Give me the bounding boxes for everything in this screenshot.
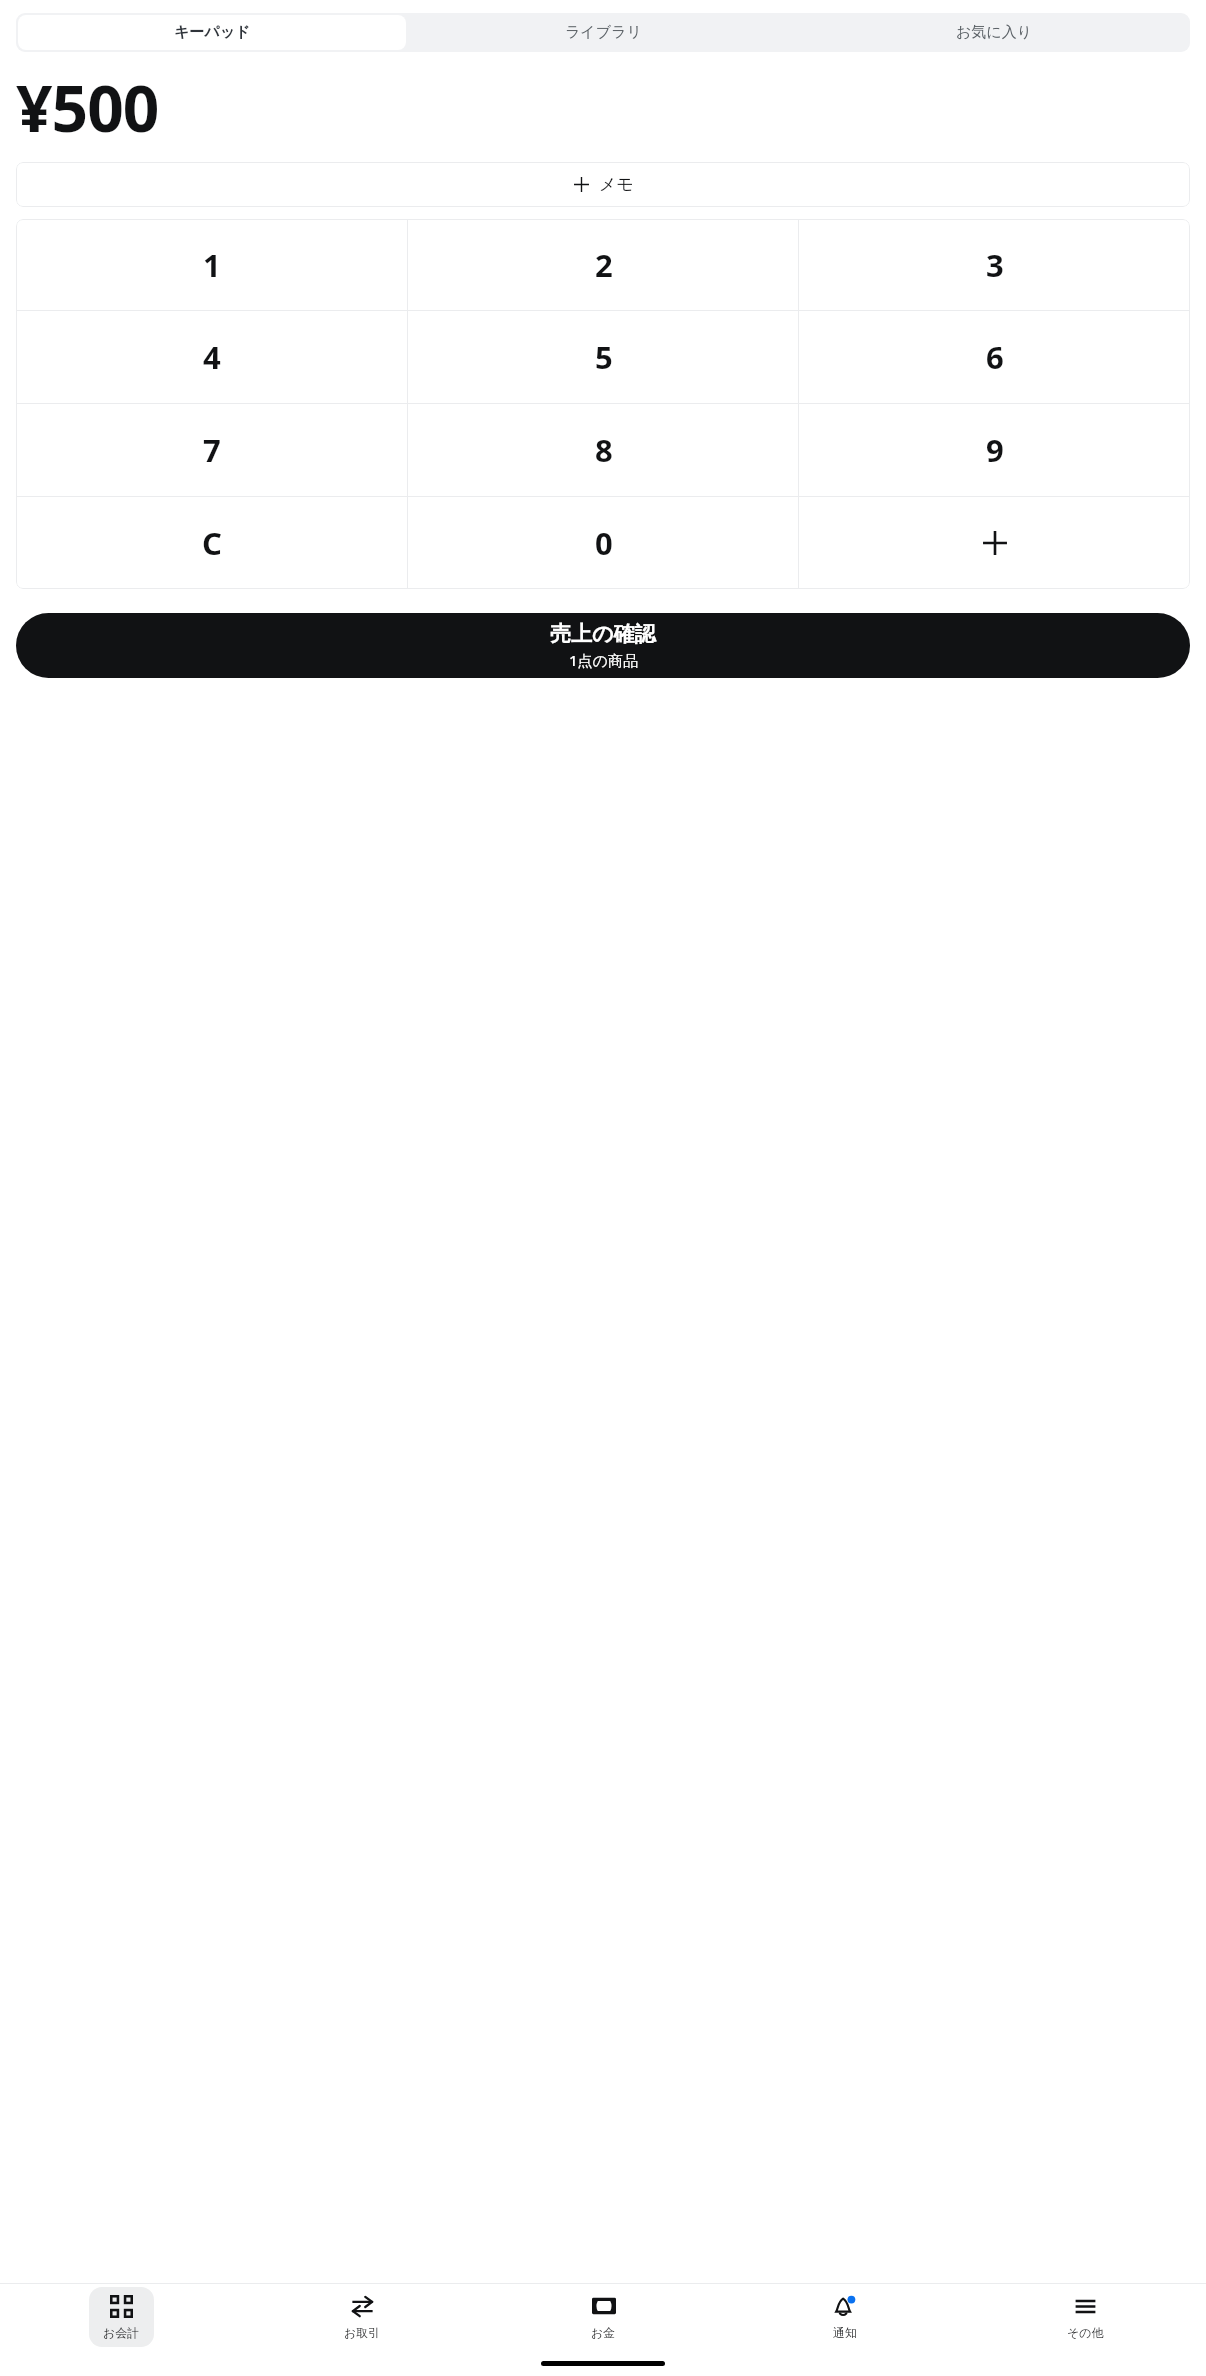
- button[interactable]: 5: [408, 311, 799, 403]
- button[interactable]: Transactions: [330, 2287, 395, 2347]
- button[interactable]: キーパッド: [18, 15, 406, 50]
- button[interactable]: お気に入り: [801, 15, 1188, 50]
- button[interactable]: C: [16, 497, 408, 589]
- staticText: ライブラリ: [565, 23, 642, 42]
- staticText: 5: [595, 336, 613, 378]
- button[interactable]: 4: [16, 311, 408, 403]
- other: Add: [982, 530, 1008, 556]
- button[interactable]: 売上の確認: [16, 613, 1190, 678]
- staticText: お気に入り: [956, 23, 1033, 42]
- staticText: メモ: [599, 174, 634, 195]
- other: Transactions: [351, 2295, 374, 2318]
- staticText: 4: [203, 336, 221, 378]
- staticText: 9: [986, 429, 1004, 471]
- staticText: 0: [595, 522, 613, 564]
- staticText: 3: [986, 244, 1004, 286]
- staticText: 売上の確認: [550, 621, 656, 647]
- staticText: お金: [591, 2325, 616, 2340]
- staticText: 7: [203, 429, 221, 471]
- button[interactable]: 3: [799, 219, 1190, 310]
- button[interactable]: Notifications: [812, 2287, 877, 2347]
- button[interactable]: Checkout: [89, 2287, 154, 2347]
- staticText: 通知: [833, 2325, 857, 2340]
- other: More: [1074, 2295, 1097, 2318]
- button[interactable]: ライブラリ: [410, 15, 797, 50]
- button[interactable]: 1: [16, 219, 408, 310]
- staticText: 1点の商品: [569, 650, 638, 670]
- button[interactable]: Money: [571, 2287, 636, 2347]
- other: Notifications: [833, 2295, 856, 2318]
- button[interactable]: 6: [799, 311, 1190, 403]
- staticText: 2: [595, 244, 613, 286]
- button[interactable]: 9: [799, 404, 1190, 496]
- button[interactable]: 7: [16, 404, 408, 496]
- button[interactable]: Add: [799, 497, 1190, 589]
- button[interactable]: 8: [408, 404, 799, 496]
- button[interactable]: 2: [408, 219, 799, 310]
- staticText: 1: [203, 244, 221, 286]
- other: Money: [592, 2294, 616, 2318]
- staticText: ¥500: [16, 64, 159, 151]
- staticText: お会計: [103, 2325, 140, 2340]
- staticText: キーパッド: [174, 23, 251, 42]
- staticText: お取引: [344, 2325, 381, 2340]
- staticText: C: [202, 522, 222, 564]
- staticText: 6: [986, 336, 1004, 378]
- staticText: その他: [1067, 2325, 1104, 2340]
- staticText: 8: [595, 429, 613, 471]
- button[interactable]: 0: [408, 497, 799, 589]
- button[interactable]: More: [1053, 2287, 1118, 2347]
- other: Checkout: [110, 2295, 133, 2318]
- button[interactable]: メモ: [16, 162, 1190, 207]
